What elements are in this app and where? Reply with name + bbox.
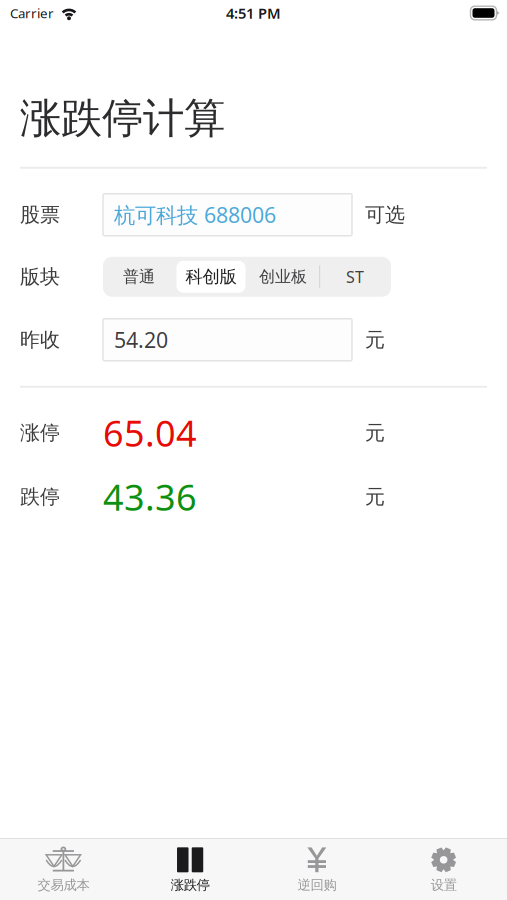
staticText: 元 <box>365 420 385 445</box>
button[interactable]: 科创版 <box>175 257 247 297</box>
button[interactable]: 交易成本 <box>0 839 127 900</box>
staticText: 设置 <box>431 877 457 893</box>
staticText: 元 <box>365 327 385 352</box>
button[interactable]: ST <box>319 257 391 297</box>
button[interactable]: 普通 <box>103 257 175 297</box>
staticText: 54.20 <box>114 326 168 354</box>
staticText: ST <box>346 266 364 287</box>
staticText: Carrier <box>10 4 54 22</box>
staticText: 可选 <box>365 202 405 227</box>
button[interactable]: 创业板 <box>247 257 319 297</box>
staticText: 65.04 <box>103 409 197 457</box>
staticText: 杭可科技 688006 <box>114 201 276 229</box>
staticText: 版块 <box>20 264 60 289</box>
staticText: 43.36 <box>103 473 197 521</box>
staticText: 涨跌停 <box>171 877 210 893</box>
staticText: 跌停 <box>20 484 60 509</box>
staticText: 科创版 <box>185 266 236 287</box>
button[interactable]: 涨跌停 <box>127 839 254 900</box>
staticText: 涨停 <box>20 420 60 445</box>
staticText: 元 <box>365 484 385 509</box>
staticText: 普通 <box>123 267 155 287</box>
staticText: 4:51 PM <box>226 3 281 23</box>
staticText: 逆回购 <box>297 877 336 893</box>
staticText: 昨收 <box>20 327 60 352</box>
staticText: 交易成本 <box>37 877 89 893</box>
staticText: 股票 <box>20 202 60 227</box>
button[interactable]: 设置 <box>380 839 507 900</box>
staticText: 涨跌停计算 <box>20 93 225 144</box>
staticText: 创业板 <box>259 267 307 287</box>
button[interactable]: 逆回购 <box>253 839 380 900</box>
